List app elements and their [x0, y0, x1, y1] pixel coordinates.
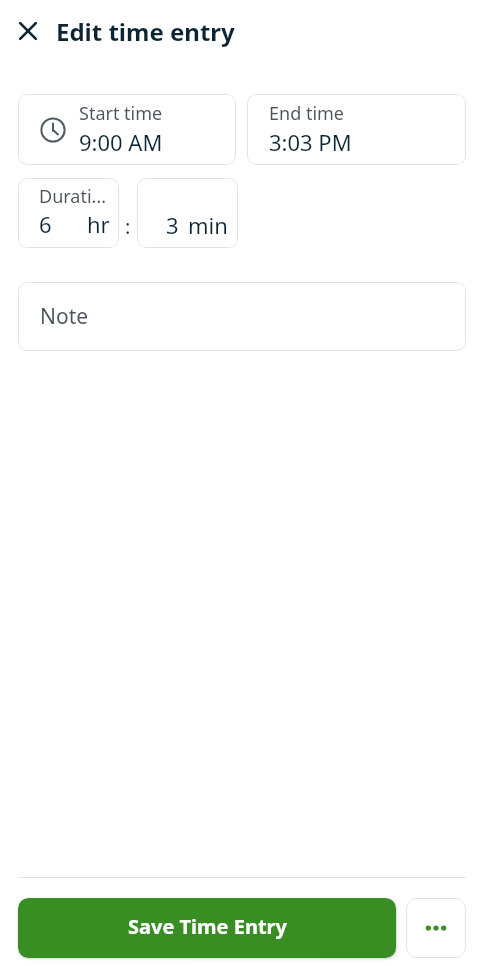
- button[interactable]: Start time: [18, 94, 236, 165]
- staticText: 9:00 AM: [79, 127, 163, 157]
- button[interactable]: Durati...: [18, 178, 119, 248]
- button[interactable]: Save Time Entry: [18, 898, 396, 958]
- button[interactable]: Note: [18, 282, 466, 351]
- staticText: 3:03 PM: [269, 127, 352, 157]
- staticText: Durati...: [39, 184, 107, 209]
- staticText: End time: [269, 101, 345, 126]
- staticText: Start time: [79, 101, 163, 126]
- staticText: 3: [166, 210, 179, 240]
- staticText: 6: [39, 209, 52, 239]
- button[interactable]: More options: [406, 898, 466, 958]
- staticText: Edit time entry: [56, 15, 235, 48]
- staticText: hr: [87, 209, 110, 239]
- button[interactable]: End time: [247, 94, 466, 165]
- staticText: Save Time Entry: [128, 913, 287, 940]
- staticText: Note: [40, 302, 89, 331]
- staticText: :: [125, 213, 131, 240]
- button[interactable]: 3: [137, 178, 238, 248]
- staticText: min: [188, 210, 228, 240]
- button[interactable]: Close: [11, 14, 45, 48]
